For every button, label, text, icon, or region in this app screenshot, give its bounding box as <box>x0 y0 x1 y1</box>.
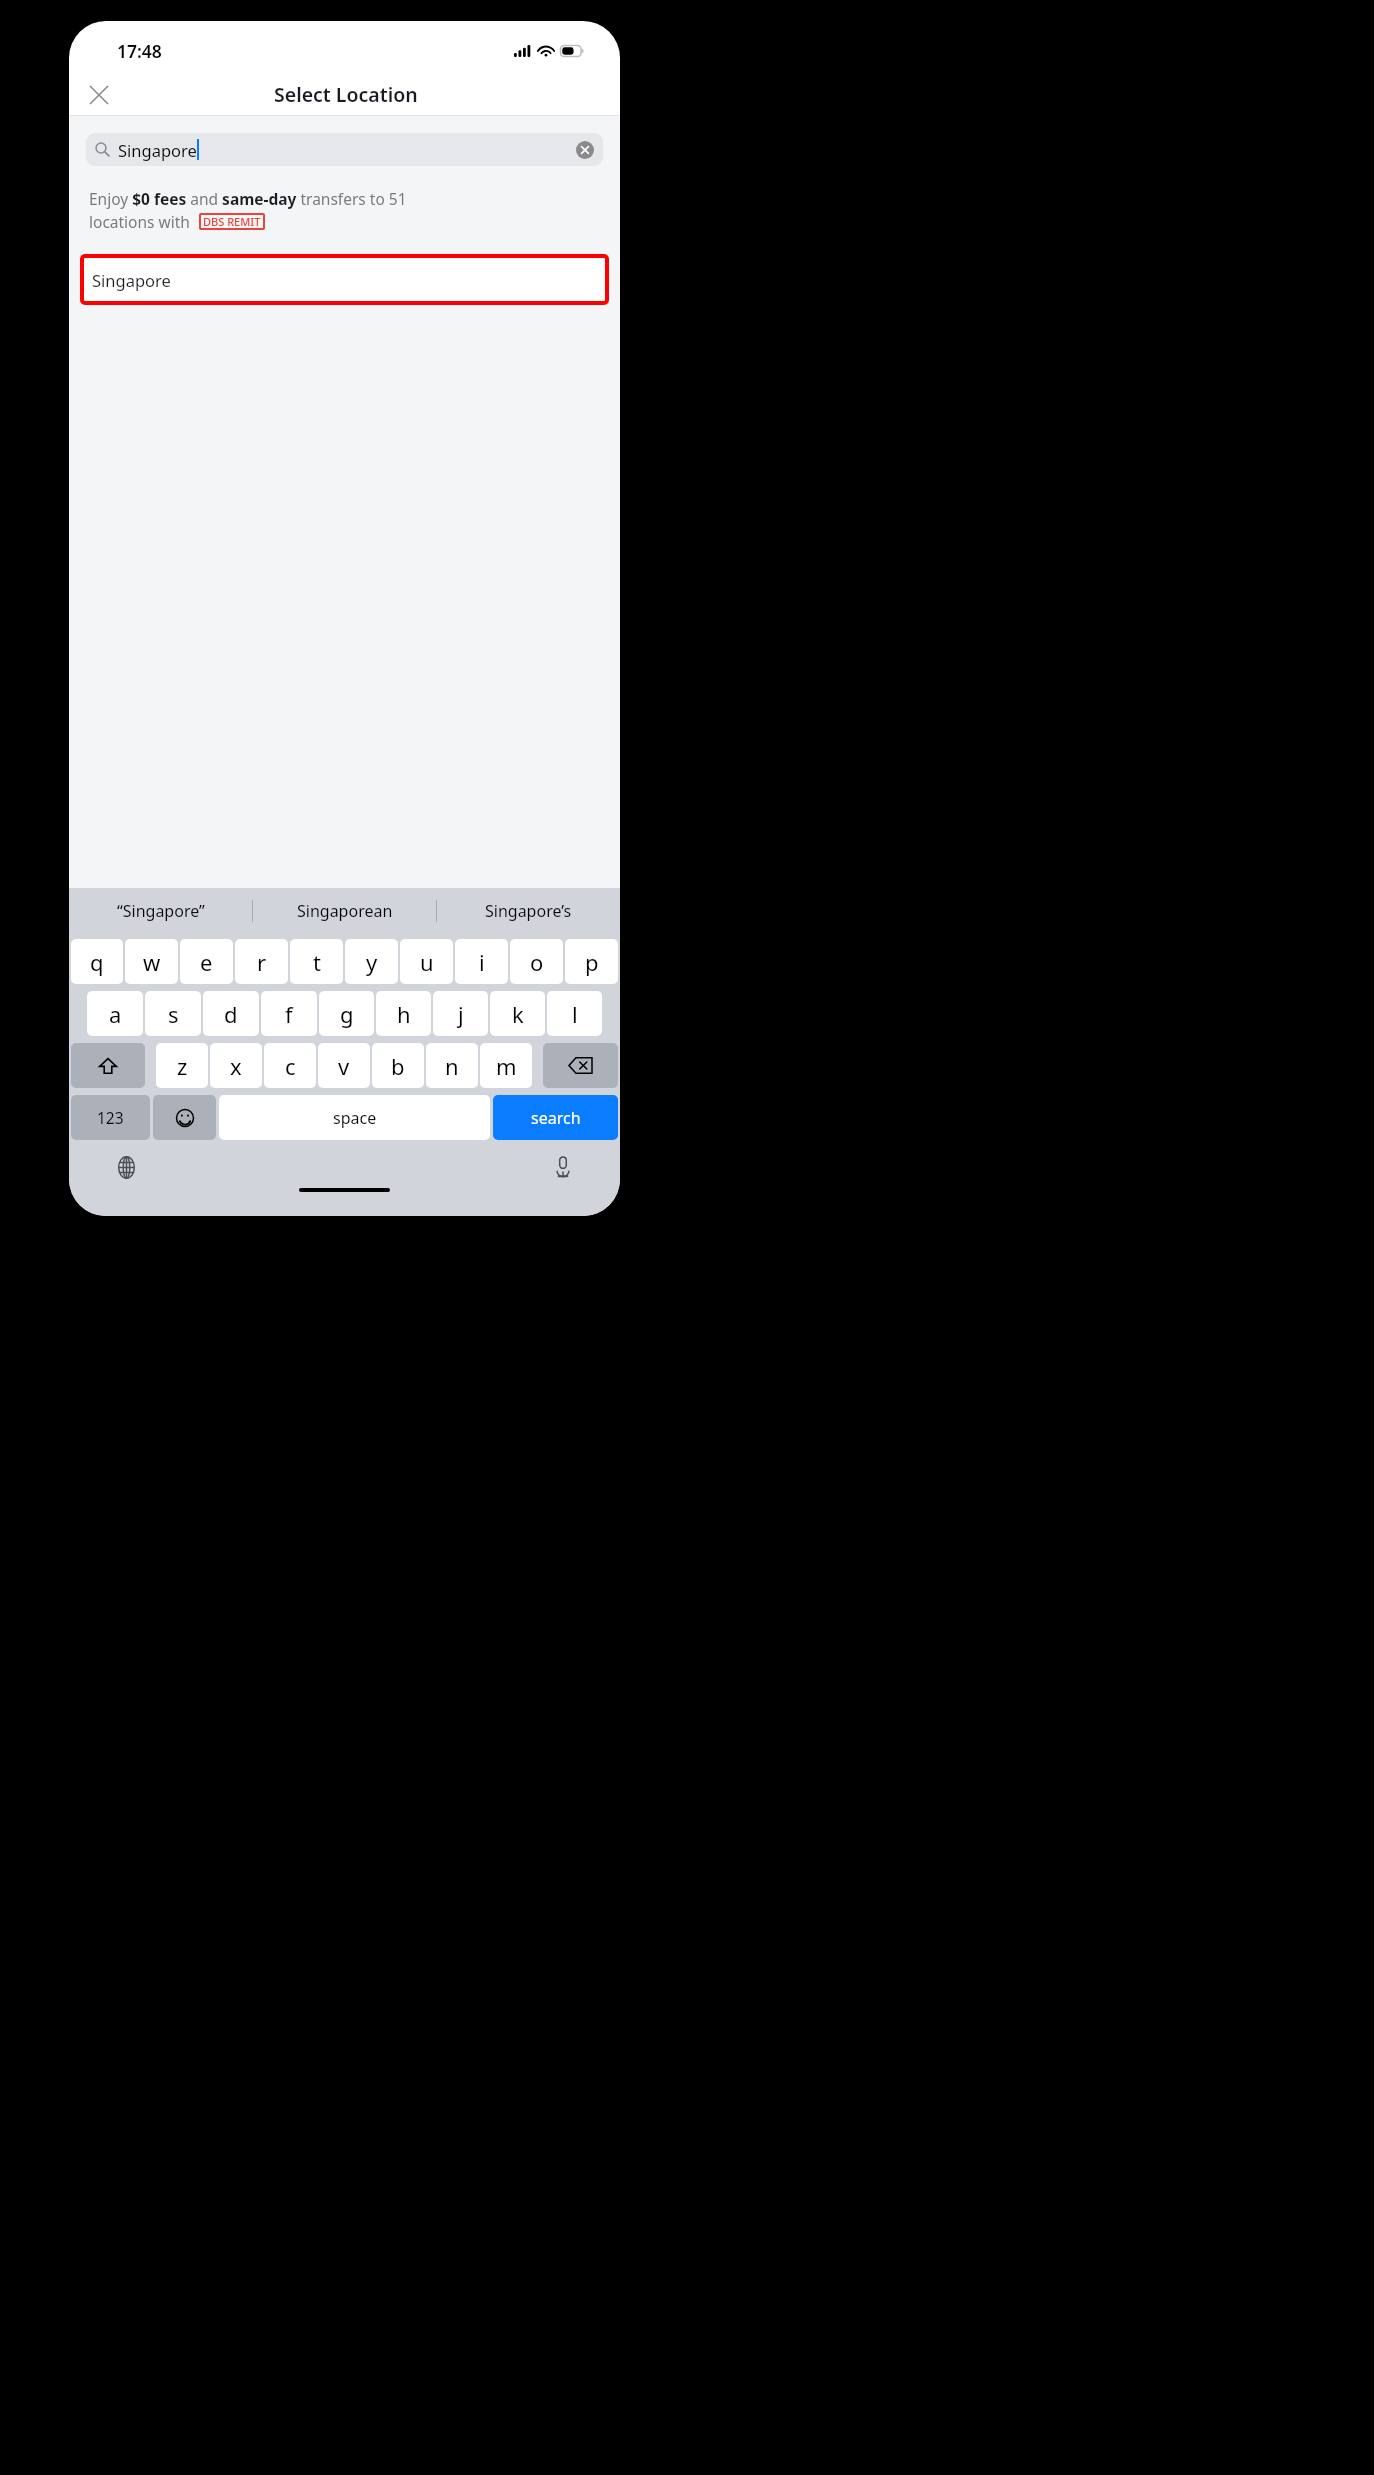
button[interactable]: o <box>510 939 563 984</box>
button[interactable]: search <box>493 1095 618 1140</box>
button[interactable]: p <box>565 939 618 984</box>
staticText: p <box>585 947 599 977</box>
staticText: o <box>530 947 544 977</box>
button[interactable]: Singapore <box>86 133 603 166</box>
staticText: search <box>531 1107 581 1129</box>
button[interactable]: Emoji <box>153 1095 216 1140</box>
staticText: f <box>285 999 293 1029</box>
staticText: Select Location <box>274 81 418 108</box>
staticText: q <box>90 947 104 977</box>
staticText: d <box>224 999 238 1029</box>
staticText: l <box>572 999 578 1029</box>
button[interactable]: f <box>261 991 317 1036</box>
button[interactable]: Close <box>79 75 119 115</box>
staticText: Singapore’s <box>485 900 572 922</box>
staticText: u <box>420 947 434 977</box>
button[interactable]: Backspace <box>543 1043 618 1088</box>
staticText: Singapore <box>118 139 197 161</box>
staticText: locations with <box>89 211 190 232</box>
staticText: y <box>366 947 378 977</box>
staticText: h <box>397 999 411 1029</box>
button[interactable]: Shift <box>71 1043 145 1088</box>
staticText: x <box>230 1051 242 1081</box>
staticText: “Singapore” <box>117 900 205 922</box>
staticText: Singapore <box>92 269 171 291</box>
staticText: t <box>313 947 321 977</box>
button[interactable]: c <box>264 1043 316 1088</box>
staticText: Enjoy $0 fees and same-day transfers to … <box>89 188 407 209</box>
button[interactable]: h <box>376 991 431 1036</box>
staticText: b <box>391 1051 405 1081</box>
button[interactable]: v <box>318 1043 370 1088</box>
staticText: v <box>338 1051 350 1081</box>
staticText: s <box>168 999 179 1029</box>
staticText: a <box>109 999 122 1029</box>
staticText: 17:48 <box>117 39 162 63</box>
button[interactable]: g <box>319 991 374 1036</box>
staticText: i <box>479 947 485 977</box>
staticText: g <box>340 999 354 1029</box>
button[interactable]: n <box>426 1043 478 1088</box>
button[interactable]: s <box>145 991 201 1036</box>
staticText: DBS REMIT <box>203 214 261 229</box>
button[interactable]: Singaporean <box>253 888 436 934</box>
button[interactable]: r <box>235 939 288 984</box>
staticText: w <box>143 947 161 977</box>
staticText: k <box>512 999 524 1029</box>
button[interactable]: y <box>345 939 398 984</box>
button[interactable]: e <box>180 939 233 984</box>
button[interactable]: j <box>433 991 488 1036</box>
staticText: e <box>200 947 213 977</box>
staticText: c <box>285 1051 296 1081</box>
button[interactable]: d <box>203 991 259 1036</box>
staticText: space <box>333 1107 377 1129</box>
button[interactable]: w <box>125 939 178 984</box>
staticText: 123 <box>97 1107 124 1128</box>
button[interactable]: z <box>156 1043 208 1088</box>
staticText: z <box>177 1051 188 1081</box>
button[interactable]: Clear text <box>576 141 594 159</box>
button[interactable]: t <box>290 939 343 984</box>
button[interactable]: Dictation <box>546 1150 580 1184</box>
button[interactable]: “Singapore” <box>69 888 252 934</box>
staticText: Singaporean <box>297 900 393 922</box>
button[interactable]: l <box>547 991 602 1036</box>
button[interactable]: Change keyboard language <box>109 1150 143 1184</box>
button[interactable]: x <box>210 1043 262 1088</box>
button[interactable]: Singapore’s <box>437 888 620 934</box>
staticText: m <box>496 1051 517 1081</box>
button[interactable]: 123 <box>71 1095 150 1140</box>
button[interactable]: q <box>71 939 123 984</box>
staticText: n <box>445 1051 459 1081</box>
button[interactable]: k <box>490 991 545 1036</box>
staticText: j <box>458 999 464 1029</box>
staticText: r <box>257 947 267 977</box>
button[interactable]: a <box>87 991 143 1036</box>
button[interactable]: i <box>455 939 508 984</box>
button[interactable]: space <box>219 1095 490 1140</box>
button[interactable]: Singapore <box>83 257 606 302</box>
button[interactable]: m <box>480 1043 532 1088</box>
button[interactable]: u <box>400 939 453 984</box>
button[interactable]: b <box>372 1043 424 1088</box>
